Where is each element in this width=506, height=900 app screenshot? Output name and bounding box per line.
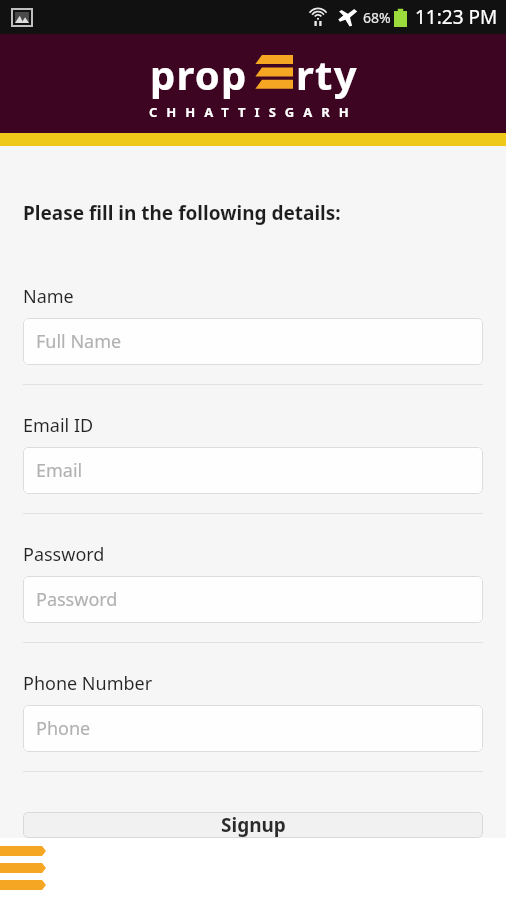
staticText: Password bbox=[23, 542, 105, 567]
staticText: Name bbox=[23, 284, 74, 309]
button[interactable]: Email bbox=[23, 447, 483, 494]
staticText: 11:23 PM bbox=[415, 4, 498, 30]
other: Wi-Fi bbox=[308, 8, 328, 26]
staticText: CHHATTISGARH bbox=[149, 103, 358, 121]
staticText: prop bbox=[150, 47, 248, 101]
staticText: Full Name bbox=[36, 329, 122, 354]
staticText: Password bbox=[36, 587, 118, 612]
other: Battery 68 percent bbox=[394, 8, 407, 27]
staticText: Phone Number bbox=[23, 671, 153, 696]
other: Airplane mode bbox=[337, 8, 358, 27]
staticText: rty bbox=[296, 47, 358, 101]
staticText: Please fill in the following details: bbox=[23, 200, 341, 226]
staticText: Phone bbox=[36, 716, 91, 741]
button[interactable]: Phone bbox=[23, 705, 483, 752]
other: Image notification bbox=[12, 9, 32, 26]
staticText: Email ID bbox=[23, 413, 94, 438]
button[interactable]: Password bbox=[23, 576, 483, 623]
button[interactable]: Full Name bbox=[23, 318, 483, 365]
staticText: Email bbox=[36, 458, 83, 483]
staticText: Signup bbox=[221, 812, 286, 838]
button[interactable]: Signup bbox=[23, 812, 483, 838]
staticText: 68% bbox=[363, 8, 391, 27]
